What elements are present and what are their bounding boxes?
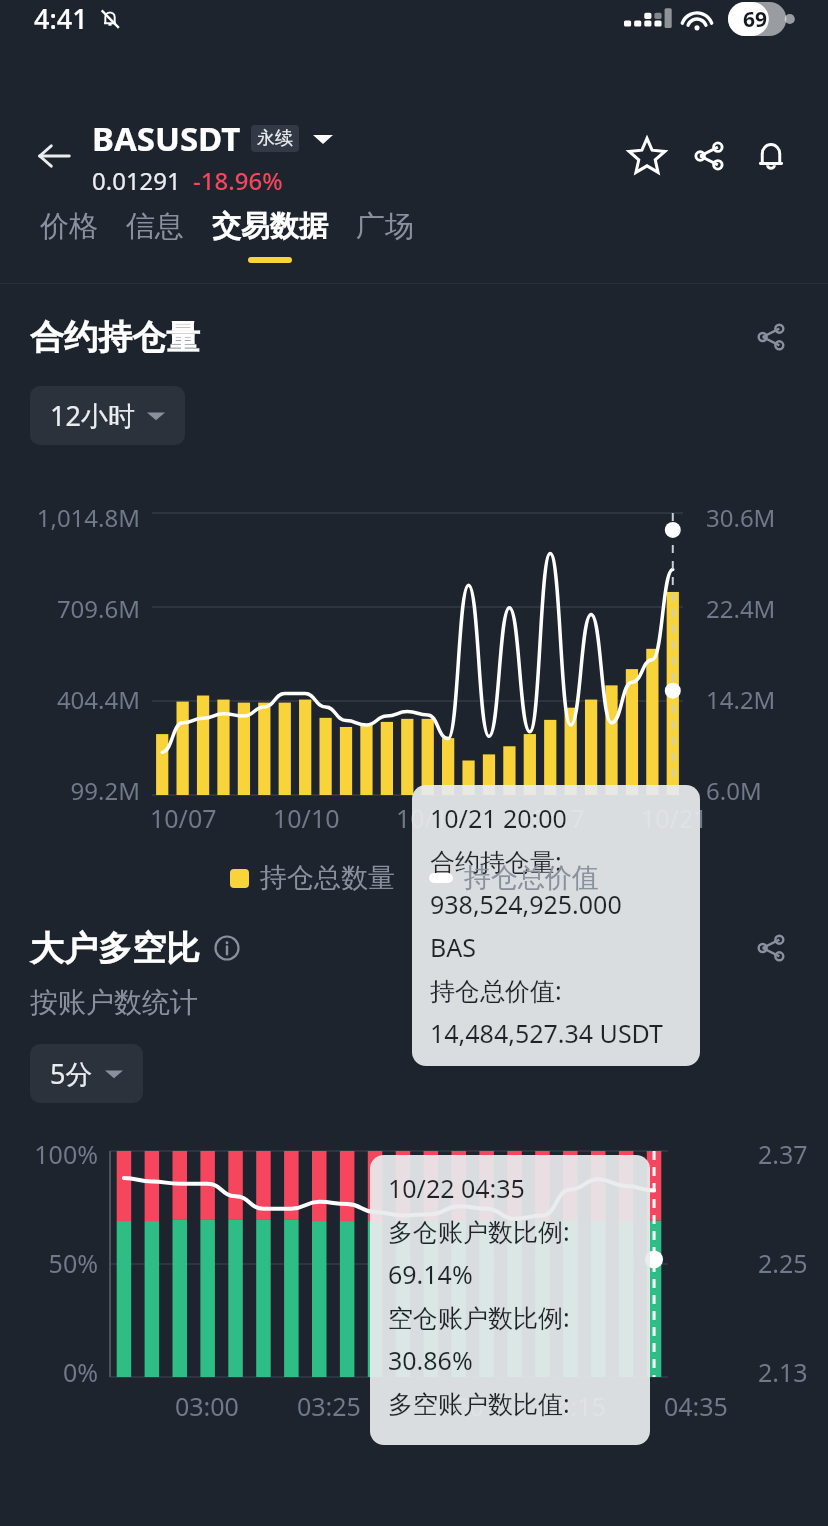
staticText: 2.25 <box>758 1246 808 1280</box>
staticText: 交易数据 <box>212 208 328 245</box>
staticText: 空仓账户数比例: <box>388 1300 570 1334</box>
staticText: 按账户数统计 <box>30 985 198 1020</box>
staticText: 938,524,925.000 <box>430 887 622 921</box>
staticText: 22.4M <box>706 592 816 625</box>
staticText: 0.01291 <box>92 164 181 197</box>
staticText: 多仓账户数比例: <box>388 1214 570 1248</box>
staticText: -18.96% <box>193 164 283 197</box>
staticText: 30.86% <box>388 1343 473 1377</box>
button[interactable]: 信息 <box>112 208 198 257</box>
staticText: 多空账户数比值: <box>388 1386 570 1420</box>
staticText: 0% <box>6 1355 98 1389</box>
staticText: 永续 <box>257 127 293 150</box>
staticText: 04:35 <box>664 1389 728 1423</box>
staticText: 价格 <box>40 208 98 245</box>
staticText: 14.2M <box>706 683 816 716</box>
button[interactable]: 交易数据 <box>198 208 342 263</box>
staticText: 合约持仓量: <box>430 844 562 878</box>
staticText: 2.13 <box>758 1355 808 1389</box>
staticText: 5分 <box>50 1055 93 1092</box>
staticText: 100% <box>6 1137 98 1171</box>
button[interactable]: 广场 <box>342 208 428 257</box>
staticText: 03:00 <box>175 1389 239 1423</box>
staticText: 2.37 <box>758 1137 808 1171</box>
button[interactable]: BASUSDT <box>92 116 616 197</box>
staticText: 持仓总价值 <box>464 861 599 895</box>
staticText: 04:15 <box>542 1389 606 1423</box>
staticText: 4:41 <box>34 0 88 37</box>
staticText: 10/14 <box>396 801 463 835</box>
button[interactable]: Alerts <box>740 125 802 187</box>
staticText: BAS <box>430 930 476 964</box>
staticText: 合约持仓量 <box>30 316 200 359</box>
button[interactable]: Back <box>26 128 82 184</box>
staticText: 99.2M <box>12 774 140 807</box>
button[interactable]: Share <box>678 125 740 187</box>
staticText: 404.4M <box>12 683 140 716</box>
staticText: 30.6M <box>706 501 816 534</box>
staticText: 10/07 <box>150 801 217 835</box>
staticText: BASUSDT <box>92 116 241 161</box>
button[interactable]: Favorite <box>616 125 678 187</box>
staticText: 10/22 04:35 <box>388 1171 525 1205</box>
staticText: 持仓总数量 <box>260 861 395 895</box>
staticText: 广场 <box>356 208 414 245</box>
staticText: 10/10 <box>273 801 340 835</box>
button[interactable]: Info <box>210 931 244 965</box>
staticText: 03:50 <box>420 1389 484 1423</box>
staticText: 10/17 <box>518 801 585 835</box>
staticText: 69 <box>743 5 768 34</box>
staticText: 12小时 <box>50 397 135 434</box>
staticText: 6.0M <box>706 774 816 807</box>
button[interactable]: 5分 <box>30 1044 143 1103</box>
button[interactable]: 12小时 <box>30 386 185 445</box>
staticText: 14,484,527.34 USDT <box>430 1016 664 1050</box>
staticText: 50% <box>6 1246 98 1280</box>
button[interactable]: 价格 <box>26 208 112 257</box>
staticText: 大户多空比 <box>30 927 200 970</box>
staticText: 1,014.8M <box>12 501 140 534</box>
button[interactable]: Share chart <box>744 310 798 364</box>
staticText: 信息 <box>126 208 184 245</box>
staticText: 10/21 20:00 <box>430 801 567 835</box>
button[interactable]: Share chart <box>744 921 798 975</box>
staticText: 69.14% <box>388 1257 473 1291</box>
staticText: 709.6M <box>12 592 140 625</box>
staticText: 持仓总价值: <box>430 973 562 1007</box>
staticText: 03:25 <box>297 1389 361 1423</box>
staticText: 10/21 <box>641 801 708 835</box>
